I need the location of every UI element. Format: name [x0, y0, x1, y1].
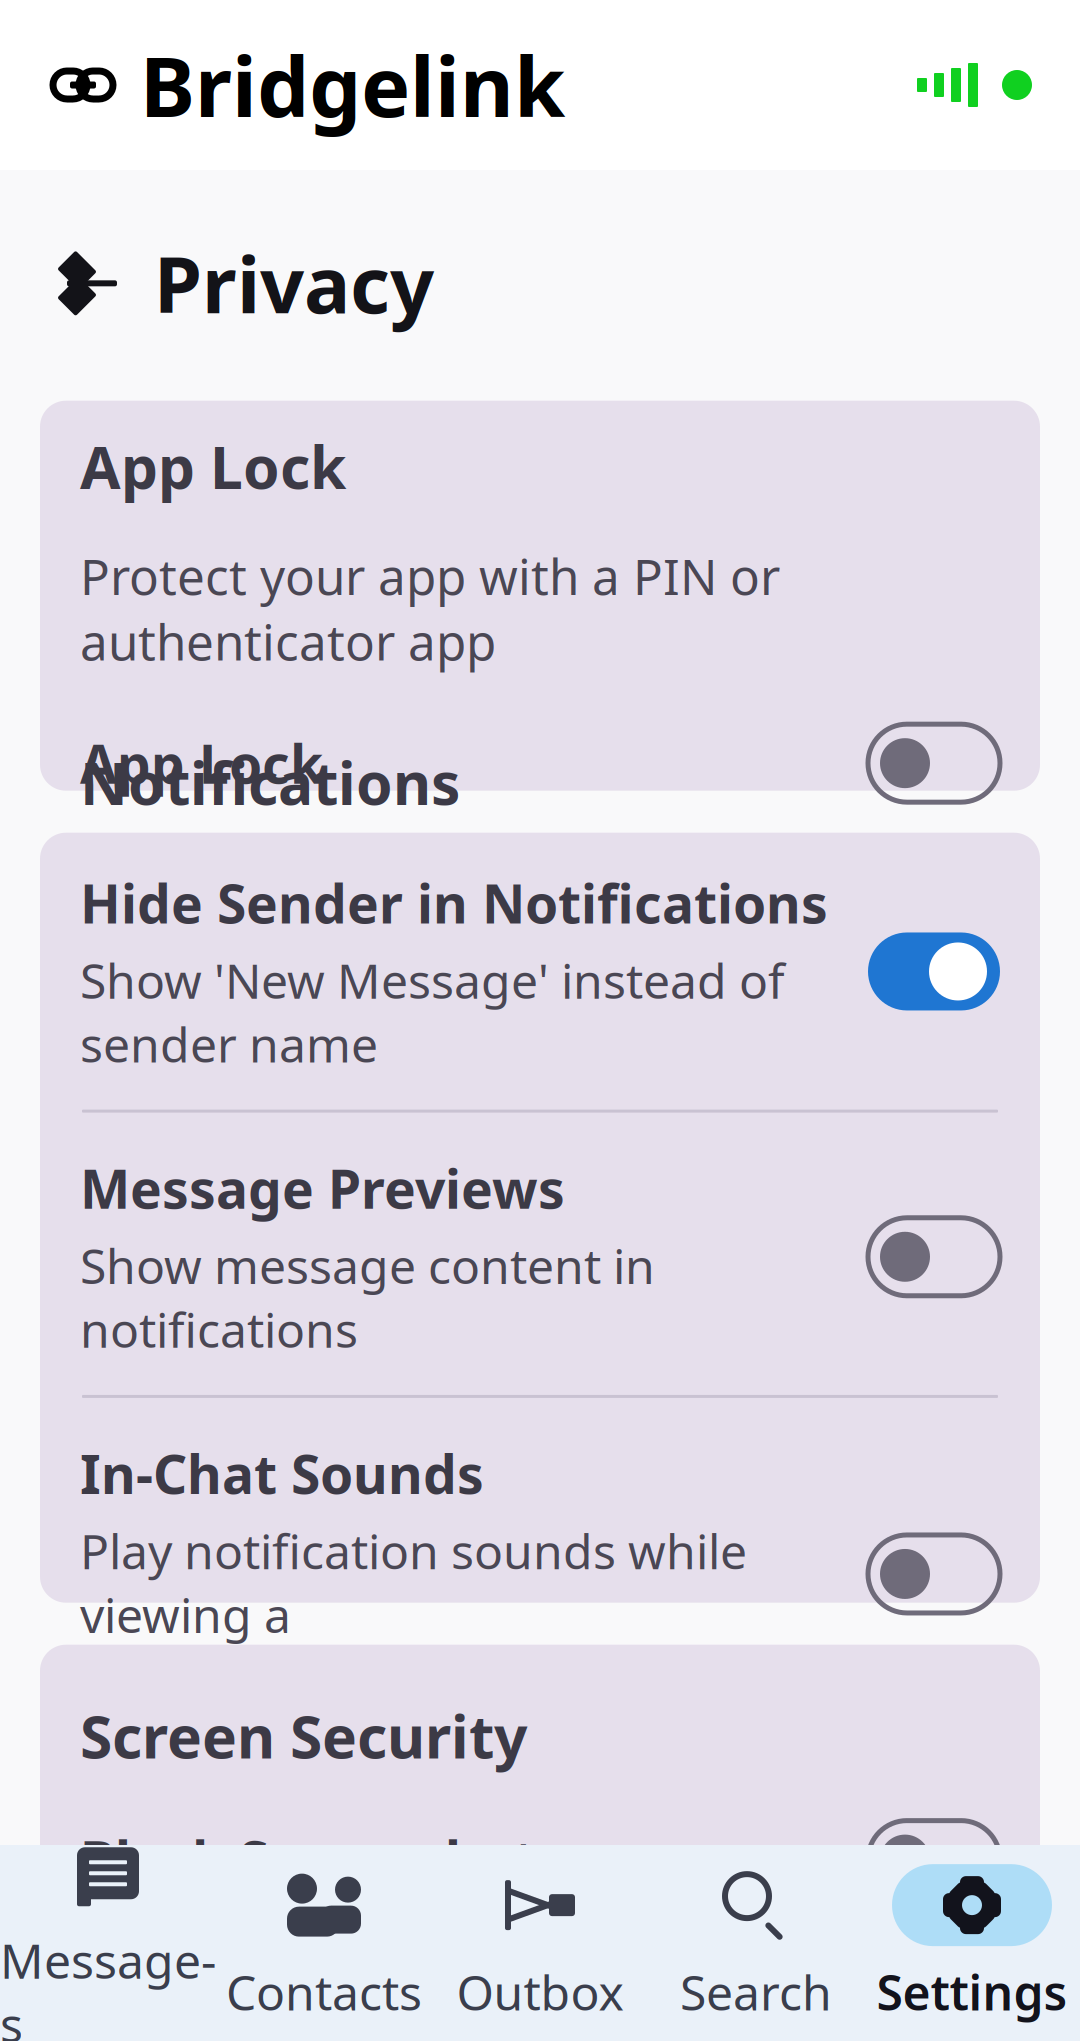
button[interactable]: Settings — [864, 1845, 1080, 2041]
button[interactable]: Hide Sender in Notifications — [40, 821, 1040, 1110]
button[interactable]: Outbox — [432, 1845, 648, 2041]
button[interactable]: Search — [648, 1845, 864, 2041]
button[interactable]: App Lock — [80, 674, 1000, 816]
staticText: Privacy — [154, 232, 434, 335]
staticText: Screen Security — [80, 1697, 527, 1775]
staticText: Messages — [0, 1928, 216, 2041]
staticText: Show 'New Message' instead of sender nam… — [80, 948, 785, 1076]
button[interactable]: Messages — [0, 1845, 216, 2041]
staticText: Settings — [876, 1960, 1067, 2024]
staticText: App Lock — [80, 427, 346, 505]
staticText: Notifications — [80, 743, 460, 821]
staticText: Show message content in notifications — [80, 1233, 655, 1361]
staticText: Hide Sender in Notifications — [80, 867, 828, 938]
button[interactable]: Contacts — [216, 1845, 432, 2041]
button[interactable]: Message Previews — [40, 1113, 1040, 1395]
staticText: Search — [680, 1960, 832, 2024]
staticText: In-Chat Sounds — [80, 1438, 484, 1509]
button[interactable]: In-Chat Sounds — [40, 1398, 1040, 1744]
staticText: App Lock — [80, 728, 323, 798]
staticText: Bridgelink — [140, 30, 565, 140]
staticText: Contacts — [226, 1960, 422, 2024]
staticText: Play notification sounds while viewing a… — [80, 1519, 747, 1710]
button[interactable]: Back — [44, 235, 140, 331]
staticText: Message Previews — [80, 1153, 565, 1223]
staticText: Block Screenshots — [80, 1824, 563, 1895]
staticText: Outbox — [456, 1960, 623, 2024]
staticText: Protect your app with a PIN or authentic… — [80, 543, 780, 674]
